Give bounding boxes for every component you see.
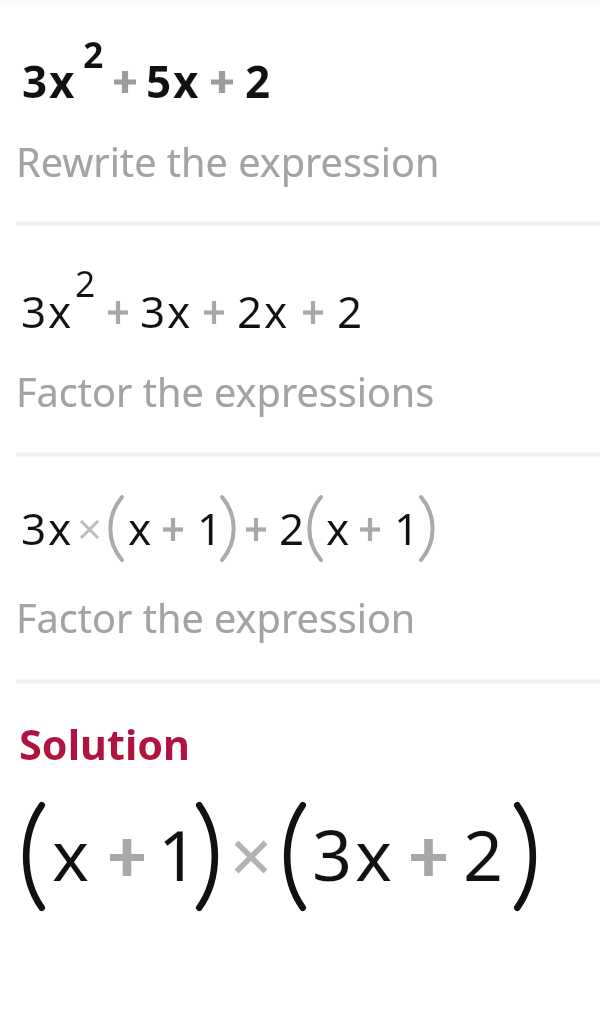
staticText: x — [326, 498, 350, 558]
staticText: 2 — [245, 51, 271, 111]
staticText: Factor the expressions — [16, 365, 435, 419]
staticText: Factor the expression — [16, 591, 416, 645]
staticText: 2 — [337, 281, 363, 341]
button[interactable]: Step: 3x times x plus 1, plus 2 times x … — [0, 456, 600, 680]
staticText: 5x — [146, 51, 201, 111]
staticText: 3x — [140, 281, 193, 341]
staticText: 2x — [237, 281, 290, 341]
button[interactable]: Step: 3x squared plus 3x plus 2x plus 2,… — [0, 225, 600, 453]
staticText: 2 — [463, 806, 504, 901]
staticText: 2 — [83, 30, 104, 78]
staticText: x — [128, 498, 152, 558]
button[interactable]: Step: 3x squared plus 5x plus 2, rewrite… — [0, 0, 600, 222]
staticText: Rewrite the expression — [16, 135, 440, 189]
staticText: 1 — [158, 806, 199, 901]
staticText: 3x — [21, 281, 74, 341]
staticText: 2 — [279, 498, 305, 558]
staticText: 2 — [75, 259, 96, 307]
staticText: x — [52, 806, 90, 901]
staticText: 3x — [22, 51, 77, 111]
staticText: Solution — [19, 716, 191, 772]
staticText: 1 — [394, 498, 420, 558]
staticText: 3x — [21, 498, 74, 558]
staticText: 3x — [312, 806, 396, 901]
staticText: 1 — [197, 498, 223, 558]
